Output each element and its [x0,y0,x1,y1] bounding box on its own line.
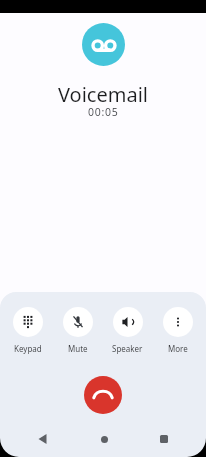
staticText: Keypad [14,343,42,354]
button[interactable] [82,23,125,66]
button[interactable]: More [163,307,193,354]
staticText: More [168,343,188,354]
staticText: 00:05 [88,105,119,119]
staticText: Speaker [112,343,143,354]
staticText: Mute [68,343,88,354]
staticText: Voicemail [58,81,148,108]
button[interactable] [31,433,55,445]
button[interactable]: Mute [63,307,93,354]
button[interactable] [84,376,122,414]
button[interactable] [152,433,176,445]
button[interactable] [92,433,116,445]
button[interactable]: Keypad [13,307,43,354]
button[interactable]: Speaker [112,307,143,354]
